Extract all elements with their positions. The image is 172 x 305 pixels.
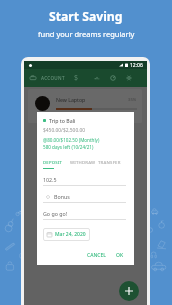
other: Refresh (110, 75, 116, 81)
button[interactable]: New Laptop (28, 89, 142, 123)
staticText: 580 days left (10/24/21) (43, 144, 94, 150)
staticText: 12:06 (130, 62, 143, 69)
staticText: 35% (128, 97, 137, 103)
staticText: 102.5 (43, 176, 57, 183)
button[interactable]: CANCEL (85, 250, 108, 261)
button[interactable]: OK (114, 250, 126, 261)
staticText: New Laptop (56, 96, 86, 103)
staticText: Mar 24, 2020 (55, 231, 86, 238)
button[interactable]: Mar 24, 2020 (43, 228, 90, 241)
staticText: DEPOSIT (43, 159, 63, 165)
staticText: $ (74, 73, 79, 83)
staticText: CANCEL (87, 252, 106, 259)
staticText: Go go go! (43, 210, 68, 217)
button[interactable]: Add savings goal (119, 281, 139, 301)
staticText: Bonus (54, 193, 70, 200)
staticText: Trip to Bali (49, 117, 76, 124)
staticText: OK (116, 252, 124, 259)
button[interactable]: TRANSFER (98, 159, 126, 168)
staticText: @80.00/$102.50 (Monthly) (43, 137, 100, 143)
staticText: TRANSFER (98, 159, 121, 165)
staticText: ACCOUNT (41, 75, 65, 81)
button[interactable]: WITHDRAW (70, 159, 98, 168)
staticText: WITHDRAW (70, 159, 96, 165)
other: Statistics (94, 75, 100, 81)
staticText: $450.00/$2,500.00 (43, 127, 86, 134)
button[interactable]: DEPOSIT (43, 159, 70, 169)
staticText: Start Saving (49, 8, 123, 25)
staticText: fund your dreams regularly (38, 29, 135, 39)
other: Settings (126, 75, 132, 81)
